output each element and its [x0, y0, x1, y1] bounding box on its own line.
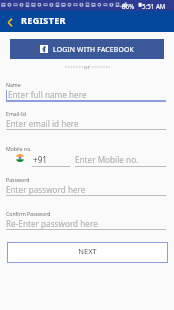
staticText: Enter Mobile no. — [75, 154, 139, 165]
button[interactable]: Back — [0, 11, 16, 32]
button[interactable]: LOGIN WITH FACEBOOK — [10, 39, 164, 59]
staticText: Enter full name here — [8, 89, 87, 100]
staticText: NEXT — [78, 246, 97, 256]
staticText: Confirm Password — [6, 210, 51, 217]
staticText: 5:51 AM — [142, 2, 166, 10]
staticText: REGISTER — [21, 14, 66, 26]
staticText: 86% — [122, 2, 135, 10]
staticText: Enter password here — [6, 184, 86, 195]
staticText: Re-Enter password here — [6, 218, 98, 229]
staticText: Password — [6, 176, 30, 183]
staticText: Enter email id here — [6, 118, 79, 129]
staticText: or — [84, 63, 91, 71]
staticText: Email-Id — [6, 110, 26, 117]
button[interactable]: NEXT — [7, 242, 168, 263]
staticText: +91 — [33, 154, 48, 165]
staticText: Mobile no. — [6, 145, 32, 152]
staticText: LOGIN WITH FACEBOOK — [53, 45, 134, 54]
staticText: Name — [6, 81, 21, 88]
